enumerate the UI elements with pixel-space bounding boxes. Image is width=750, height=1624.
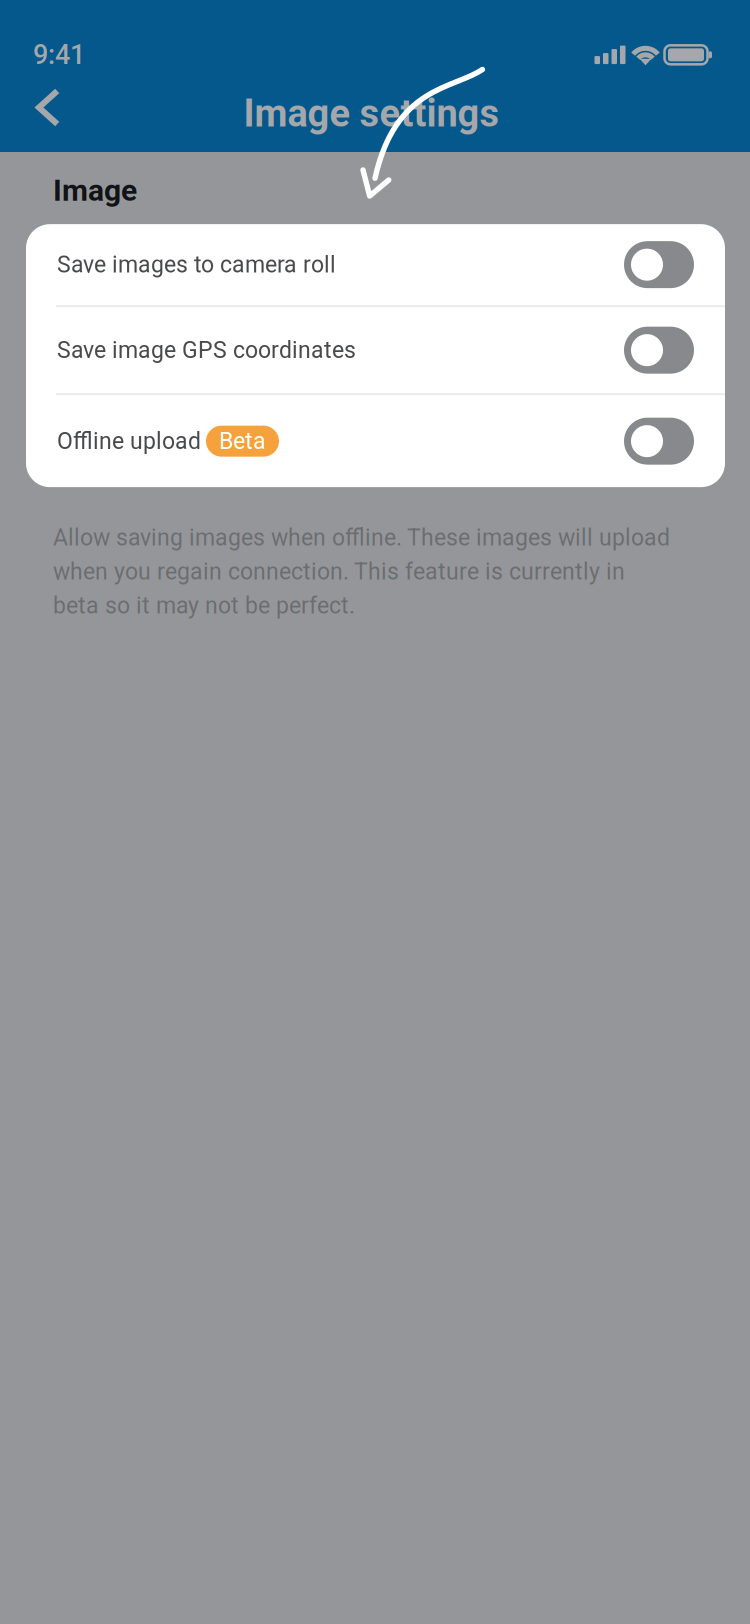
button[interactable]: Save images to camera roll — [26, 224, 725, 305]
staticText: Beta — [219, 428, 266, 455]
staticText: Allow saving images when offline. These … — [53, 524, 670, 619]
staticText: Save images to camera roll — [57, 251, 336, 278]
staticText: Image settings — [243, 91, 499, 136]
button[interactable]: Offline upload — [26, 395, 725, 487]
button[interactable]: Back — [0, 61, 82, 166]
staticText: 9:41 — [33, 39, 85, 71]
staticText: Offline upload — [57, 428, 201, 455]
button[interactable]: Save image GPS coordinates — [26, 307, 725, 393]
staticText: Image — [53, 173, 137, 208]
staticText: Save image GPS coordinates — [57, 337, 356, 364]
